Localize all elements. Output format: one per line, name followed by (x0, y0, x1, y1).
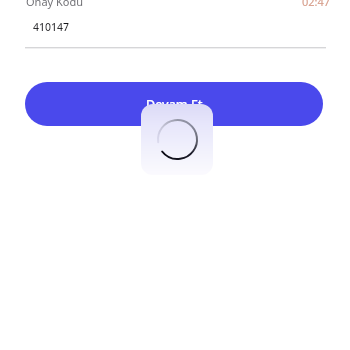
button[interactable]: Onay Kodu (25, 0, 326, 49)
staticText: Onay Kodu (26, 0, 84, 9)
button[interactable]: Devam Et (25, 82, 323, 126)
staticText: 02:47 (302, 0, 331, 9)
other: Loading (141, 104, 213, 175)
staticText: Devam Et (146, 96, 203, 113)
staticText: 410147 (33, 20, 70, 34)
